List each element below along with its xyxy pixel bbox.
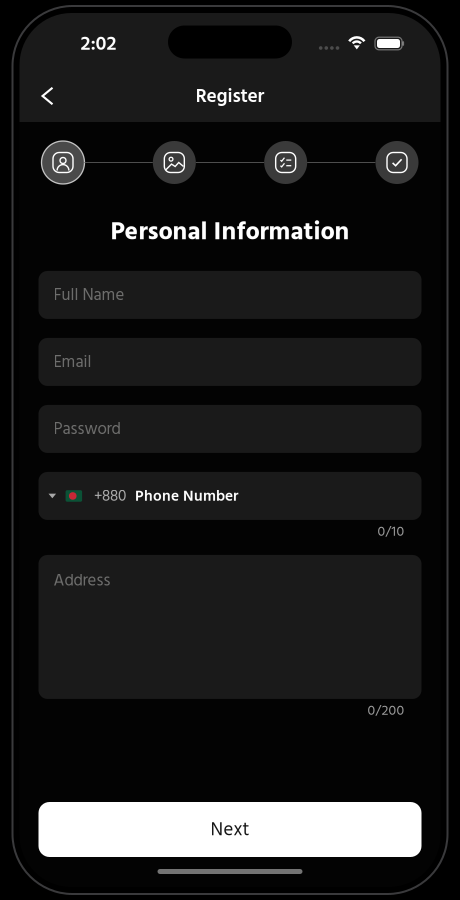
button[interactable]: Next	[19, 802, 440, 857]
button[interactable]: Photo step	[153, 141, 196, 184]
staticText: +880	[94, 484, 126, 508]
button[interactable]: Details step	[264, 141, 307, 184]
button[interactable]: Confirm step	[375, 141, 418, 184]
button[interactable]: Password	[38, 405, 421, 453]
button[interactable]: Address	[38, 555, 421, 699]
staticText: Phone Number	[135, 484, 238, 508]
staticText: Address	[53, 567, 110, 594]
staticText: 0/10	[377, 520, 404, 543]
button[interactable]: +880	[38, 472, 421, 520]
staticText: Next	[210, 814, 249, 845]
staticText: Personal Information	[110, 211, 349, 252]
button[interactable]: Email	[38, 338, 421, 386]
staticText: Password	[53, 415, 120, 442]
button[interactable]: Full Name	[38, 271, 421, 319]
button[interactable]: Personal information step, current	[41, 141, 84, 184]
staticText: Email	[53, 348, 91, 375]
staticText: 0/200	[367, 699, 404, 722]
button[interactable]: Back	[19, 76, 68, 116]
staticText: Register	[195, 80, 264, 112]
staticText: 2:02	[80, 27, 116, 60]
staticText: Full Name	[53, 281, 124, 308]
